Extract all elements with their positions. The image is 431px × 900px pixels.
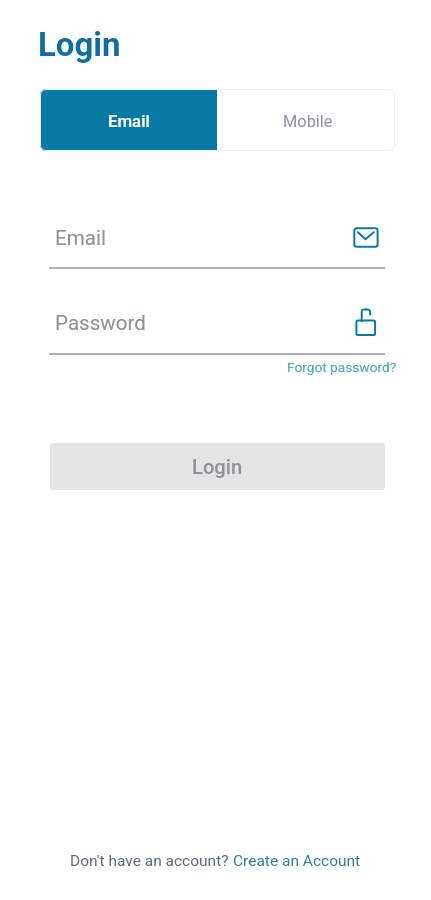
button[interactable]: Forgot password? xyxy=(287,359,397,375)
staticText: Create an Account xyxy=(233,852,361,870)
staticText: Email xyxy=(108,111,150,131)
button[interactable]: Password xyxy=(49,303,385,355)
button[interactable]: Show password xyxy=(352,300,382,342)
button[interactable]: Email xyxy=(352,222,382,254)
button[interactable]: Mobile xyxy=(217,89,395,151)
staticText: Email xyxy=(55,226,106,250)
staticText: Password xyxy=(55,311,146,335)
staticText: Mobile xyxy=(283,112,333,131)
button[interactable]: Email xyxy=(40,89,217,151)
staticText: Forgot password? xyxy=(287,359,397,375)
button[interactable]: Email xyxy=(49,218,385,269)
staticText: Login xyxy=(38,25,121,64)
button[interactable]: Create an Account xyxy=(233,852,361,870)
staticText: Don't have an account? xyxy=(70,852,233,870)
button[interactable]: Login xyxy=(50,443,385,490)
staticText: Login xyxy=(192,455,243,479)
